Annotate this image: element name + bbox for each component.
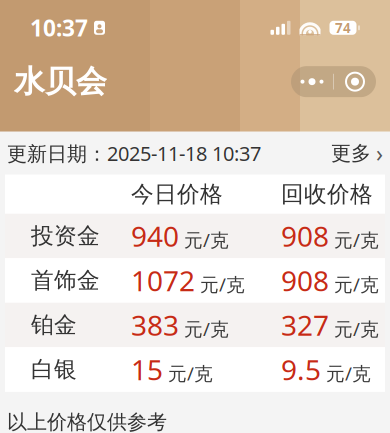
staticText: 元/克 — [184, 227, 229, 252]
staticText: 元/克 — [334, 272, 379, 297]
staticText: 元/克 — [200, 272, 245, 297]
button[interactable]: 更多 — [331, 132, 383, 174]
staticText: 74 — [335, 19, 351, 37]
staticText: 327 — [281, 306, 329, 344]
staticText: 更新日期：2025-11-18 10:37 — [7, 140, 261, 166]
staticText: 908 — [281, 217, 329, 255]
staticText: 以上价格仅供参考 — [7, 410, 167, 433]
staticText: 908 — [281, 262, 329, 299]
staticText: 15 — [131, 351, 163, 388]
staticText: 投资金 — [31, 222, 100, 250]
staticText: 元/克 — [334, 316, 379, 341]
staticText: 白银 — [31, 355, 77, 383]
staticText: 940 — [131, 217, 179, 255]
staticText: 383 — [131, 306, 179, 344]
staticText: 回收价格 — [281, 180, 373, 208]
staticText: 水贝会 — [14, 63, 107, 100]
staticText: 元/克 — [168, 361, 213, 386]
staticText: 铂金 — [31, 311, 77, 339]
staticText: 今日价格 — [131, 180, 223, 208]
staticText: 1072 — [131, 262, 195, 299]
staticText: 首饰金 — [31, 266, 100, 294]
staticText: 9.5 — [281, 351, 321, 388]
staticText: 元/克 — [184, 316, 229, 341]
button[interactable]: 更多操作 — [291, 66, 333, 97]
staticText: › — [376, 138, 383, 168]
button[interactable]: 关闭 — [334, 66, 376, 97]
staticText: 10:37 — [30, 13, 88, 43]
staticText: 更多 — [331, 141, 371, 165]
staticText: 元/克 — [334, 227, 379, 252]
staticText: 元/克 — [326, 361, 371, 386]
